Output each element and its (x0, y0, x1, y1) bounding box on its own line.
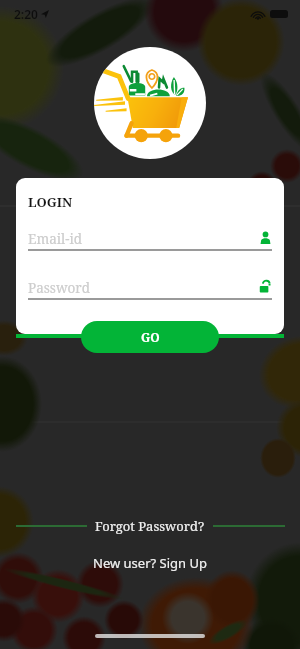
staticText: Email-id (28, 230, 83, 246)
staticText: 2:20 (14, 6, 38, 22)
staticText: Forgot Password? (95, 517, 205, 535)
staticText: GO (141, 329, 160, 345)
button[interactable]: Forgot Password? (87, 515, 213, 537)
staticText: New user? Sign Up (93, 554, 207, 572)
staticText: LOGIN (28, 193, 73, 211)
button[interactable]: GO (81, 321, 219, 353)
button[interactable]: New user? Sign Up (85, 552, 215, 574)
staticText: Password (28, 279, 91, 295)
